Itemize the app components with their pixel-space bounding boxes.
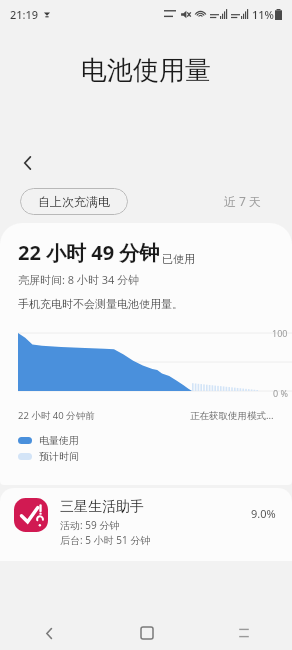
staticText: 后台: 5 小时 51 分钟 — [60, 533, 151, 547]
staticText: 三星生活助手 — [60, 498, 144, 516]
staticText: 近 7 天 — [224, 193, 262, 209]
staticText: 电池使用量 — [81, 54, 211, 87]
staticText: 9.0% — [251, 506, 276, 521]
staticText: 已使用 — [162, 252, 195, 266]
staticText: 电量使用 — [39, 434, 79, 447]
staticText: 21:19 — [10, 7, 39, 22]
staticText: 正在获取使用模式... — [190, 409, 274, 422]
staticText: 100 — [272, 327, 288, 339]
staticText: 22 小时 40 分钟前 — [18, 409, 95, 422]
button[interactable]: Back — [10, 145, 46, 181]
button[interactable]: Home — [98, 616, 195, 650]
staticText: 22 小时 49 分钟 — [18, 239, 160, 266]
staticText: 0 % — [273, 387, 288, 399]
staticText: 手机充电时不会测量电池使用量。 — [18, 297, 183, 311]
button[interactable]: 近 7 天 — [214, 187, 272, 215]
button[interactable]: 自上次充满电 — [20, 188, 128, 215]
button[interactable]: 三星生活助手 — [0, 488, 292, 561]
staticText: 亮屏时间: 8 小时 34 分钟 — [18, 272, 140, 287]
staticText: 活动: 59 分钟 — [60, 518, 120, 532]
staticText: 自上次充满电 — [38, 194, 110, 209]
button[interactable]: Recents — [195, 616, 292, 650]
staticText: 11% — [252, 7, 274, 22]
staticText: 预计时间 — [39, 450, 79, 463]
button[interactable]: Back — [0, 616, 98, 650]
